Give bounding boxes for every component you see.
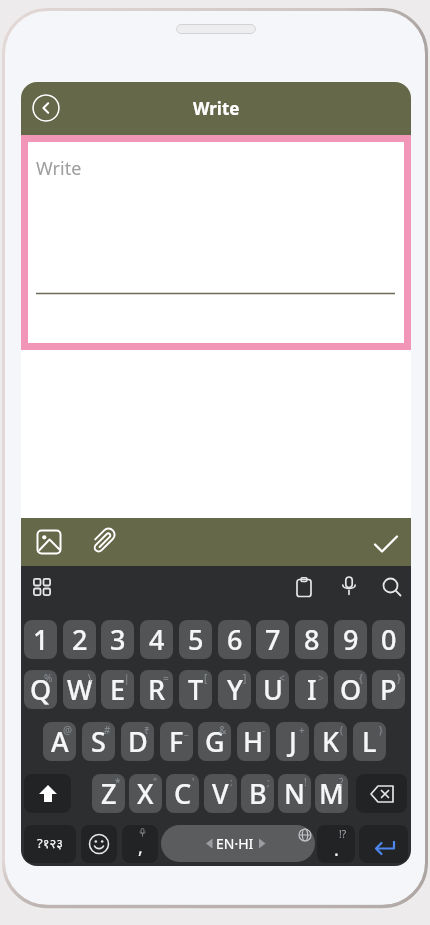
staticText: # — [104, 723, 111, 737]
staticText: , — [138, 835, 143, 860]
button[interactable]: X — [129, 774, 162, 813]
staticText: N — [284, 775, 305, 812]
button[interactable]: 5 — [179, 620, 212, 659]
button[interactable]: G — [198, 722, 231, 761]
button[interactable]: M — [315, 774, 348, 813]
button[interactable] — [294, 577, 314, 597]
staticText: H — [243, 723, 264, 760]
button[interactable]: P — [372, 670, 405, 709]
staticText: S — [91, 723, 106, 760]
button[interactable]: S — [82, 722, 115, 761]
button[interactable] — [24, 774, 71, 813]
staticText: _ — [184, 723, 189, 737]
button[interactable]: Write — [28, 142, 404, 343]
button[interactable]: D — [121, 722, 154, 761]
button[interactable]: O — [334, 670, 367, 709]
button[interactable]: R — [140, 670, 173, 709]
staticText: ! — [304, 775, 307, 789]
button[interactable] — [33, 578, 51, 596]
staticText: O — [340, 671, 362, 708]
staticText: \ — [88, 671, 92, 685]
staticText: P — [380, 671, 397, 708]
staticText: ) — [379, 723, 382, 737]
button[interactable]: Y — [218, 670, 251, 709]
staticText: X — [137, 775, 154, 812]
button[interactable]: B — [241, 774, 274, 813]
staticText: 5 — [188, 621, 204, 658]
staticText: > — [318, 671, 324, 685]
button[interactable]: K — [314, 722, 347, 761]
button[interactable]: 7 — [256, 620, 289, 659]
staticText: Q — [30, 671, 52, 708]
button[interactable]: C — [166, 774, 199, 813]
button[interactable]: N — [278, 774, 311, 813]
staticText: | — [124, 671, 130, 685]
button[interactable]: I — [295, 670, 328, 709]
button[interactable]: E — [101, 670, 134, 709]
button[interactable]: Z — [92, 774, 125, 813]
staticText: : — [230, 775, 233, 789]
staticText: ₹ — [144, 723, 150, 737]
button[interactable]: 8 — [295, 620, 328, 659]
button[interactable]: 3 — [101, 620, 134, 659]
button[interactable]: L — [353, 722, 386, 761]
staticText: - — [262, 723, 266, 737]
staticText: F — [169, 723, 184, 760]
staticText: B — [249, 775, 267, 812]
staticText: { — [359, 671, 363, 685]
staticText: 1 — [33, 621, 49, 658]
button[interactable] — [32, 94, 60, 122]
button[interactable]: Q — [24, 670, 57, 709]
staticText: * — [115, 775, 121, 789]
button[interactable]: 4 — [140, 620, 173, 659]
button[interactable] — [356, 774, 407, 813]
button[interactable]: J — [276, 722, 309, 761]
staticText: A — [51, 723, 69, 760]
staticText: E — [110, 671, 126, 708]
staticText: ? — [339, 775, 344, 789]
staticText: 3 — [110, 621, 126, 658]
staticText: Write — [193, 97, 240, 120]
button[interactable]: A — [43, 722, 76, 761]
button[interactable]: . — [317, 825, 355, 863]
staticText: K — [322, 723, 340, 760]
staticText: " — [153, 775, 158, 789]
button[interactable] — [36, 529, 62, 555]
button[interactable]: 9 — [334, 620, 367, 659]
staticText: 2 — [72, 621, 88, 658]
staticText: R — [148, 671, 166, 708]
staticText: ( — [340, 723, 343, 737]
staticText: [ — [204, 671, 208, 685]
button[interactable]: , — [122, 825, 158, 863]
staticText: M — [319, 775, 344, 812]
staticText: ; — [267, 775, 270, 789]
button[interactable]: T — [179, 670, 212, 709]
button[interactable]: 0 — [372, 620, 405, 659]
button[interactable] — [87, 527, 116, 556]
staticText: G — [205, 723, 225, 760]
staticText: 7 — [265, 621, 281, 658]
button[interactable]: F — [160, 722, 193, 761]
button[interactable]: W — [63, 670, 96, 709]
button[interactable] — [372, 530, 400, 558]
button[interactable]: U — [256, 670, 289, 709]
button[interactable] — [359, 825, 408, 863]
staticText: Z — [101, 775, 117, 812]
button[interactable]: 6 — [218, 620, 251, 659]
staticText: D — [128, 723, 148, 760]
button[interactable] — [81, 825, 117, 863]
button[interactable]: ?१२३ — [24, 825, 76, 863]
staticText: EN·HI — [216, 834, 254, 853]
button[interactable] — [339, 576, 359, 596]
button[interactable]: H — [237, 722, 270, 761]
staticText: 9 — [343, 621, 359, 658]
staticText: % — [44, 671, 53, 685]
button[interactable]: 1 — [24, 620, 57, 659]
button[interactable]: V — [204, 774, 237, 813]
staticText: < — [279, 671, 285, 685]
button[interactable] — [382, 577, 402, 597]
button[interactable]: EN·HI — [161, 825, 315, 862]
button[interactable]: 2 — [63, 620, 96, 659]
staticText: 6 — [227, 621, 243, 658]
staticText: ' — [192, 775, 195, 789]
